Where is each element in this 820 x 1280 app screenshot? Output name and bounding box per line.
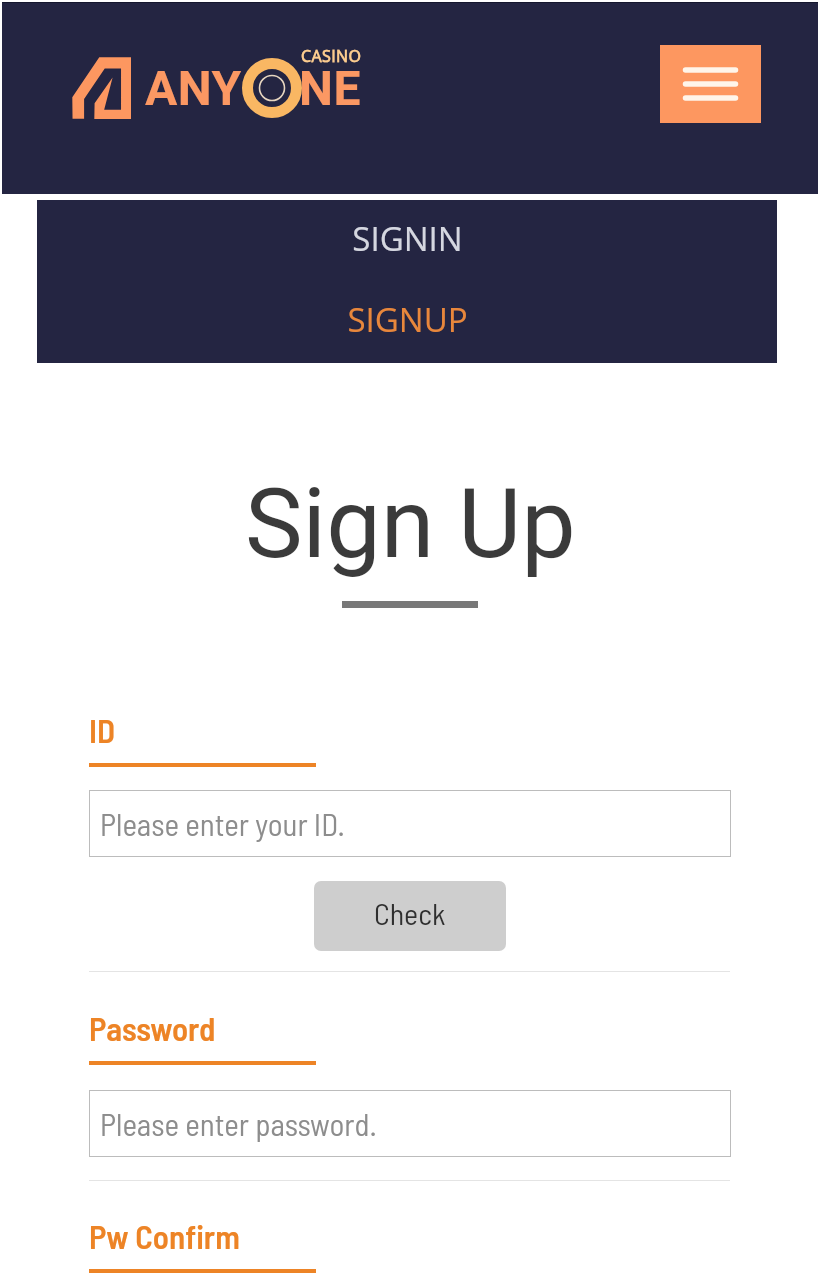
button[interactable]: SIGNIN xyxy=(37,214,777,262)
button[interactable]: Please enter password. xyxy=(89,1090,731,1157)
staticText: Please enter password. xyxy=(100,1105,377,1142)
staticText: SIGNUP xyxy=(347,297,468,342)
staticText: Password xyxy=(89,1008,216,1048)
staticText: Check xyxy=(374,895,446,931)
button[interactable]: AnyOne Casino home xyxy=(66,46,366,126)
button[interactable]: SIGNUP xyxy=(37,295,777,343)
staticText: CASINO xyxy=(301,45,362,67)
button[interactable]: Check xyxy=(314,881,506,951)
staticText: Pw Confirm xyxy=(89,1216,240,1256)
staticText: SIGNIN xyxy=(352,216,463,261)
staticText: NE xyxy=(299,60,361,116)
staticText: Please enter your ID. xyxy=(100,805,345,842)
staticText: ANY xyxy=(145,60,242,116)
button[interactable]: Please enter your ID. xyxy=(89,790,731,857)
staticText: Sign Up xyxy=(245,467,576,581)
staticText: ID xyxy=(89,710,116,750)
button[interactable]: Open navigation menu xyxy=(660,45,761,123)
